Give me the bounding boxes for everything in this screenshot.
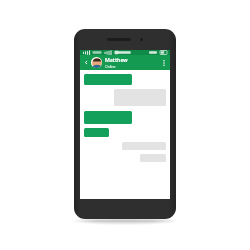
button[interactable]: Sent message xyxy=(84,128,109,137)
staticText: Matthew xyxy=(105,56,128,63)
button[interactable]: Sent message xyxy=(84,111,132,124)
staticText: Online xyxy=(105,64,116,69)
button[interactable]: Sent message xyxy=(84,74,132,85)
button[interactable]: Contact avatar xyxy=(91,57,102,68)
button[interactable]: Matthew xyxy=(105,56,161,69)
button[interactable]: Back xyxy=(83,59,90,66)
button[interactable]: More options xyxy=(161,57,167,69)
